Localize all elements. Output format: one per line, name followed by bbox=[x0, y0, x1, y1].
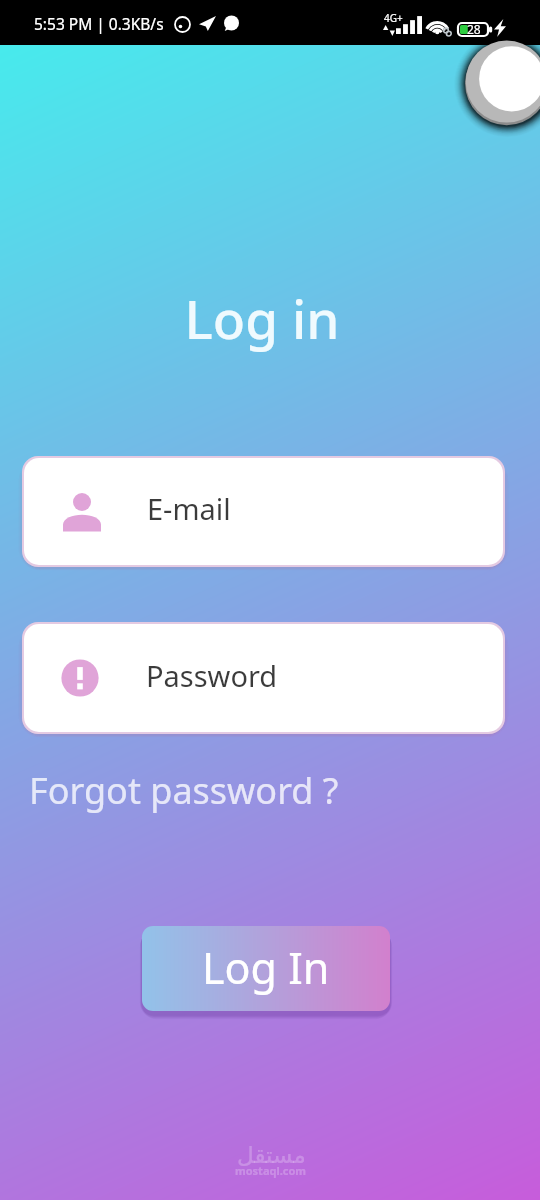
button[interactable]: Forgot password ? bbox=[29, 766, 339, 815]
staticText: مستقل bbox=[237, 1142, 306, 1169]
staticText: 4G+ bbox=[384, 11, 403, 25]
staticText: 28 bbox=[467, 21, 481, 37]
staticText: Log In bbox=[202, 938, 330, 997]
staticText: 5:53 PM | 0.3KB/s bbox=[34, 13, 164, 34]
staticText: mostaql.com bbox=[235, 1163, 307, 1178]
button[interactable]: Log In bbox=[142, 926, 390, 1011]
staticText: Log in bbox=[0, 282, 532, 354]
button[interactable] bbox=[24, 624, 503, 732]
button[interactable] bbox=[24, 458, 503, 565]
staticText: Password bbox=[146, 656, 278, 695]
staticText: E-mail bbox=[147, 489, 231, 528]
button[interactable]: Assistive touch bbox=[454, 30, 540, 136]
